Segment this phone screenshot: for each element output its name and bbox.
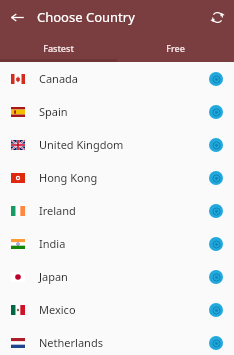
button[interactable]: Connect to Spain	[209, 105, 223, 119]
button[interactable]: Fastest	[0, 33, 117, 62]
button[interactable]: United Kingdom	[0, 128, 234, 161]
button[interactable]: Connect to India	[209, 237, 223, 251]
button[interactable]: Connect to Mexico	[209, 303, 223, 317]
staticText: Ireland	[39, 203, 209, 218]
button[interactable]: Mexico	[0, 293, 234, 326]
button[interactable]: Ireland	[0, 194, 234, 227]
button[interactable]: Canada	[0, 62, 234, 95]
button[interactable]: Connect to Ireland	[209, 204, 223, 218]
staticText: India	[39, 236, 209, 251]
button[interactable]: Spain	[0, 95, 234, 128]
staticText: Fastest	[43, 42, 74, 54]
button[interactable]: Free	[117, 33, 234, 62]
staticText: Hong Kong	[39, 170, 209, 185]
staticText: Canada	[39, 71, 209, 86]
staticText: Free	[166, 42, 185, 54]
staticText: Japan	[39, 269, 209, 284]
staticText: Spain	[39, 104, 209, 119]
button[interactable]: India	[0, 227, 234, 260]
staticText: United Kingdom	[39, 137, 209, 152]
staticText: Mexico	[39, 302, 209, 317]
button[interactable]: Connect to Japan	[209, 270, 223, 284]
button[interactable]: Japan	[0, 260, 234, 293]
staticText: Netherlands	[39, 335, 209, 350]
button[interactable]: Connect to Netherlands	[209, 336, 223, 350]
button[interactable]: Hong Kong	[0, 161, 234, 194]
button[interactable]: Back	[4, 4, 30, 30]
button[interactable]: Connect to United Kingdom	[209, 138, 223, 152]
staticText: Choose Country	[37, 8, 135, 26]
button[interactable]: Connect to Hong Kong	[209, 171, 223, 185]
button[interactable]: Refresh	[204, 4, 230, 30]
button[interactable]: Netherlands	[0, 326, 234, 355]
button[interactable]: Connect to Canada	[209, 72, 223, 86]
